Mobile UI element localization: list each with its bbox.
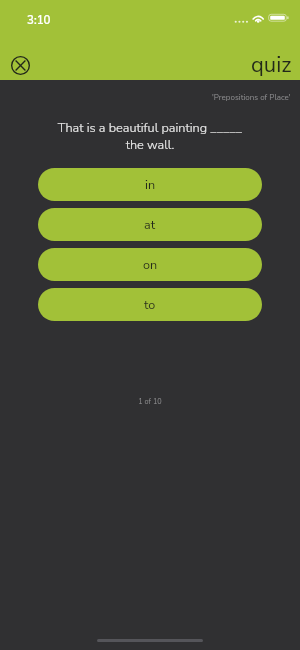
staticText: 3:10 bbox=[27, 12, 51, 28]
staticText: 1 of 10 bbox=[0, 397, 300, 407]
button[interactable]: on bbox=[38, 248, 262, 281]
staticText: 'Prepositions of Place' bbox=[212, 92, 291, 103]
button[interactable]: to bbox=[38, 288, 262, 321]
button[interactable]: at bbox=[38, 208, 262, 241]
staticText: to bbox=[144, 296, 156, 313]
staticText: That is a beautiful painting _____ the w… bbox=[20, 119, 280, 153]
button[interactable]: in bbox=[38, 168, 262, 201]
staticText: on bbox=[143, 256, 158, 273]
staticText: at bbox=[144, 216, 156, 233]
button[interactable]: Close quiz bbox=[4, 49, 36, 81]
staticText: quiz bbox=[251, 50, 292, 80]
staticText: in bbox=[145, 176, 156, 193]
